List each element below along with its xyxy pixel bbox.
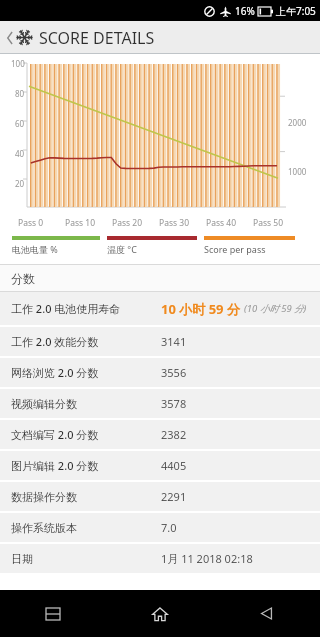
staticText: 16% xyxy=(235,4,255,18)
staticText: 60 xyxy=(15,118,25,129)
button[interactable]: 工作 2.0 电池使用寿命 xyxy=(0,292,320,325)
staticText: 4405 xyxy=(161,458,187,473)
button[interactable]: 日期 xyxy=(0,544,320,573)
staticText: 图片编辑 2.0 分数 xyxy=(11,458,161,473)
staticText: 分数 xyxy=(11,271,35,286)
staticText: Pass 30 xyxy=(159,217,189,229)
button[interactable]: 图片编辑 2.0 分数 xyxy=(0,451,320,480)
staticText: 20 xyxy=(15,178,25,189)
staticText: 上午7:05 xyxy=(276,4,316,18)
staticText: 电池电量 % xyxy=(12,243,58,255)
staticText: 操作系统版本 xyxy=(11,521,161,535)
button[interactable]: 操作系统版本 xyxy=(0,513,320,542)
staticText: 1000 xyxy=(288,166,307,177)
staticText: 3141 xyxy=(161,334,187,349)
button[interactable]: Home xyxy=(106,590,213,637)
button[interactable]: 工作 2.0 效能分数 xyxy=(0,327,320,356)
staticText: 2291 xyxy=(161,489,187,504)
staticText: 1月 11 2018 02:18 xyxy=(161,551,253,566)
button[interactable]: Back xyxy=(3,21,16,54)
staticText: 工作 2.0 效能分数 xyxy=(11,334,161,349)
staticText: 100 xyxy=(11,58,25,69)
button[interactable]: 视频编辑分数 xyxy=(0,389,320,418)
staticText: Pass 20 xyxy=(112,217,142,229)
button[interactable]: 数据操作分数 xyxy=(0,482,320,511)
staticText: 80 xyxy=(15,88,25,99)
button[interactable]: Back xyxy=(213,590,320,637)
staticText: 2382 xyxy=(161,427,187,442)
staticText: 7.0 xyxy=(161,520,177,535)
staticText: 工作 2.0 电池使用寿命 xyxy=(11,301,161,316)
staticText: 文档编写 2.0 分数 xyxy=(11,427,161,442)
staticText: (10 小时 59 分) xyxy=(244,302,307,315)
staticText: Pass 40 xyxy=(206,217,236,229)
button[interactable]: 文档编写 2.0 分数 xyxy=(0,420,320,449)
staticText: 视频编辑分数 xyxy=(11,397,161,411)
button[interactable]: Recent apps xyxy=(0,590,106,637)
button[interactable]: 网络浏览 2.0 分数 xyxy=(0,358,320,387)
staticText: SCORE DETAILS xyxy=(39,27,155,49)
staticText: Score per pass xyxy=(204,243,266,255)
staticText: 3578 xyxy=(161,396,187,411)
staticText: 10 小时 59 分 xyxy=(161,300,240,318)
staticText: 网络浏览 2.0 分数 xyxy=(11,365,161,380)
staticText: 40 xyxy=(15,148,25,159)
staticText: Pass 0 xyxy=(18,217,44,229)
staticText: 2000 xyxy=(288,117,307,128)
staticText: 3556 xyxy=(161,365,187,380)
staticText: Pass 10 xyxy=(65,217,95,229)
staticText: 日期 xyxy=(11,552,161,566)
staticText: 温度 °C xyxy=(107,243,137,255)
staticText: Pass 50 xyxy=(253,217,283,229)
staticText: 数据操作分数 xyxy=(11,490,161,504)
